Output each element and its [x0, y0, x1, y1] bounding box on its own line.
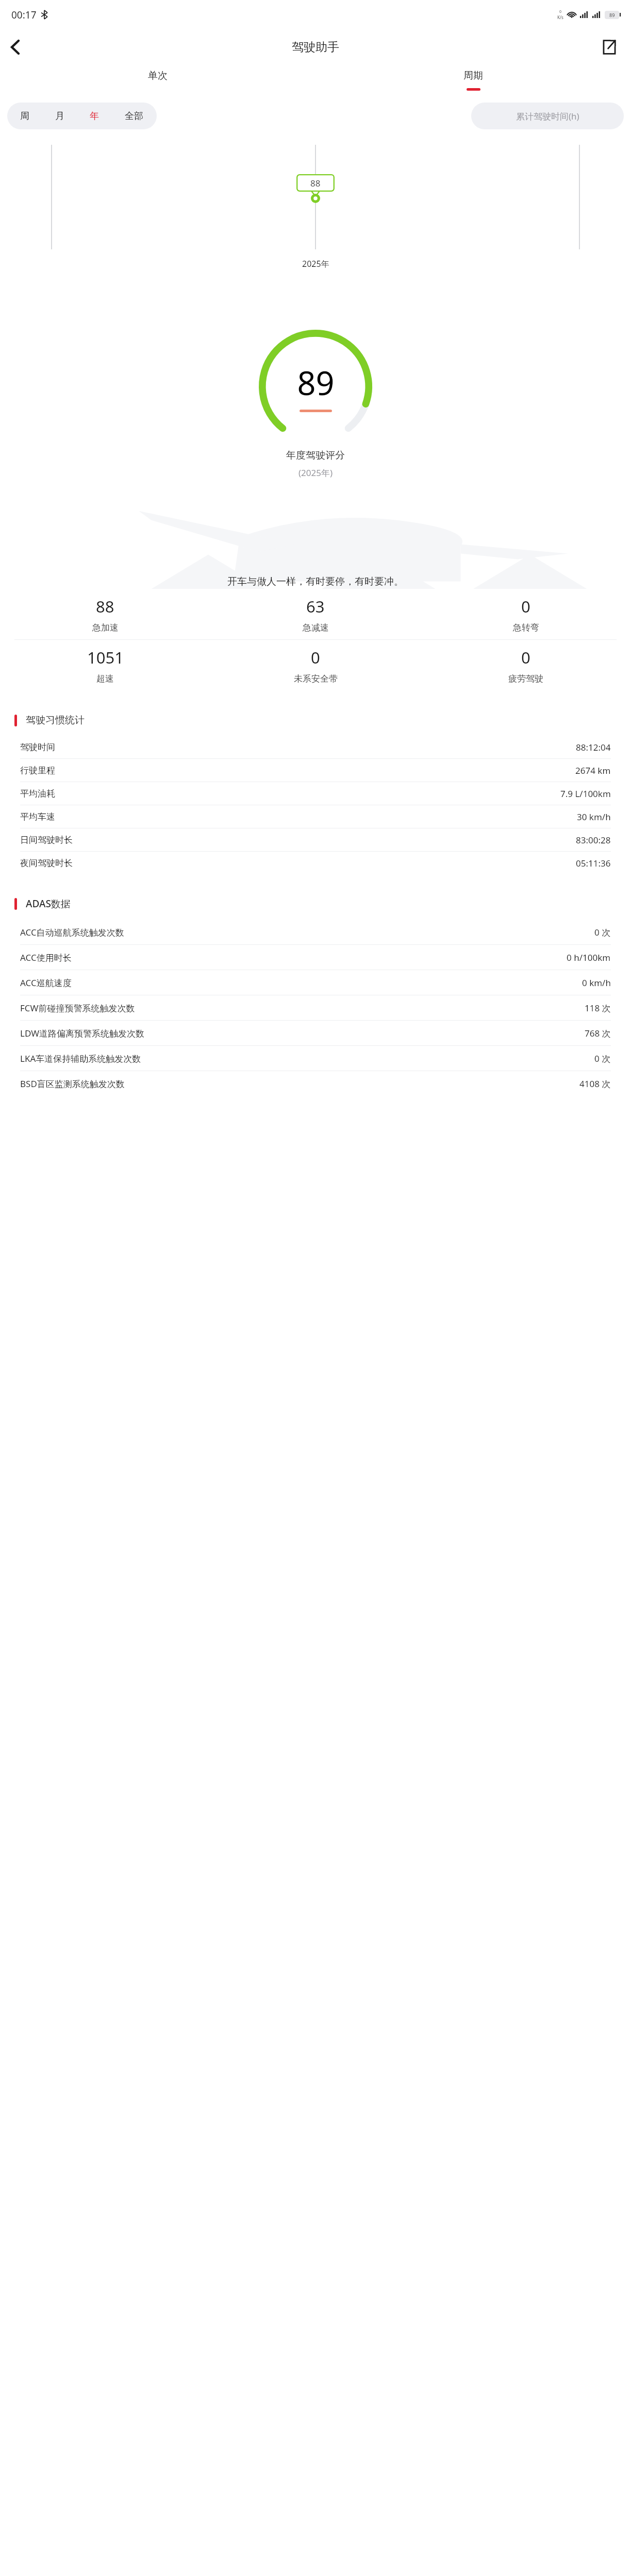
staticText: 0	[311, 647, 320, 668]
staticText: 急减速	[303, 622, 329, 633]
button[interactable]: 单次	[0, 64, 315, 97]
staticText: 全部	[125, 110, 143, 122]
button[interactable]: 行驶里程	[11, 759, 620, 782]
button[interactable]: 平均油耗	[11, 782, 620, 805]
staticText: 88	[310, 177, 321, 189]
staticText: 83:00:28	[576, 834, 611, 846]
staticText: BSD盲区监测系统触发次数	[20, 1078, 125, 1090]
button[interactable]: 63	[210, 589, 421, 639]
staticText: 0 h/100km	[567, 952, 611, 963]
staticText: 7.9 L/100km	[560, 788, 611, 800]
staticText: 急转弯	[513, 622, 539, 633]
staticText: 0	[521, 596, 530, 617]
staticText: 30 km/h	[577, 811, 611, 823]
staticText: 00:17	[11, 8, 37, 22]
staticText: ACC使用时长	[20, 952, 72, 963]
button[interactable]: 88	[0, 589, 210, 639]
button[interactable]: 1051	[0, 640, 210, 690]
button[interactable]: Share	[596, 33, 623, 60]
staticText: LKA车道保持辅助系统触发次数	[20, 1053, 141, 1064]
staticText: 0 次	[594, 1053, 611, 1064]
staticText: K/s	[557, 14, 563, 20]
staticText: 超速	[96, 673, 114, 684]
staticText: 89	[609, 12, 615, 18]
staticText: 月	[55, 110, 64, 122]
button[interactable]: 0	[210, 640, 421, 690]
staticText: 0	[559, 9, 562, 14]
button[interactable]: 平均车速	[11, 805, 620, 828]
button[interactable]: ACC巡航速度	[11, 970, 620, 995]
staticText: 疲劳驾驶	[508, 673, 543, 684]
staticText: LDW道路偏离预警系统触发次数	[20, 1027, 144, 1039]
staticText: 年	[90, 110, 99, 122]
button[interactable]: ACC使用时长	[11, 945, 620, 970]
staticText: 0 km/h	[582, 977, 611, 989]
staticText: 89	[297, 361, 335, 405]
button[interactable]: 驾驶时间	[11, 736, 620, 758]
staticText: 单次	[148, 70, 168, 82]
button[interactable]: 周期	[315, 64, 631, 97]
staticText: 0	[521, 647, 530, 668]
staticText: 1051	[87, 647, 124, 668]
staticText: 05:11:36	[576, 857, 611, 869]
button[interactable]: 0	[421, 589, 631, 639]
staticText: (2025年)	[298, 467, 333, 479]
staticText: 急加速	[92, 622, 119, 633]
staticText: 未系安全带	[294, 673, 338, 684]
button[interactable]: 全部	[111, 103, 157, 129]
staticText: 驾驶助手	[292, 40, 339, 55]
staticText: ACC自动巡航系统触发次数	[20, 926, 124, 938]
staticText: 平均油耗	[20, 788, 55, 799]
staticText: 日间驾驶时长	[20, 835, 73, 845]
staticText: ACC巡航速度	[20, 977, 72, 989]
staticText: 累计驾驶时间(h)	[516, 110, 579, 122]
button[interactable]: 累计驾驶时间(h)	[471, 103, 624, 129]
staticText: 夜间驾驶时长	[20, 858, 73, 869]
staticText: 行驶里程	[20, 765, 55, 776]
button[interactable]: 周	[7, 103, 42, 129]
staticText: 0 次	[594, 926, 611, 938]
staticText: 周	[20, 110, 29, 122]
button[interactable]: LKA车道保持辅助系统触发次数	[11, 1046, 620, 1071]
staticText: 周期	[463, 70, 483, 82]
staticText: 平均车速	[20, 811, 55, 822]
button[interactable]: BSD盲区监测系统触发次数	[11, 1071, 620, 1096]
staticText: 118 次	[585, 1002, 611, 1014]
staticText: 年度驾驶评分	[286, 449, 345, 462]
staticText: FCW前碰撞预警系统触发次数	[20, 1002, 135, 1014]
button[interactable]: ACC自动巡航系统触发次数	[11, 920, 620, 944]
button[interactable]: 年	[77, 103, 111, 129]
staticText: 驾驶习惯统计	[26, 714, 85, 726]
staticText: 88	[96, 596, 114, 617]
staticText: 2674 km	[575, 765, 611, 776]
staticText: 768 次	[585, 1027, 611, 1039]
staticText: 4108 次	[579, 1078, 611, 1090]
button[interactable]: LDW道路偏离预警系统触发次数	[11, 1021, 620, 1045]
staticText: 驾驶时间	[20, 742, 55, 753]
button[interactable]: 月	[42, 103, 77, 129]
button[interactable]: 夜间驾驶时长	[11, 852, 620, 874]
staticText: ADAS数据	[26, 897, 71, 910]
staticText: 2025年	[302, 258, 329, 269]
button[interactable]: Back	[0, 32, 30, 62]
button[interactable]: 日间驾驶时长	[11, 828, 620, 851]
button[interactable]: FCW前碰撞预警系统触发次数	[11, 995, 620, 1020]
staticText: 开车与做人一样，有时要停，有时要冲。	[227, 575, 404, 588]
button[interactable]: 0	[421, 640, 631, 690]
staticText: 63	[306, 596, 325, 617]
staticText: 88:12:04	[576, 741, 611, 753]
